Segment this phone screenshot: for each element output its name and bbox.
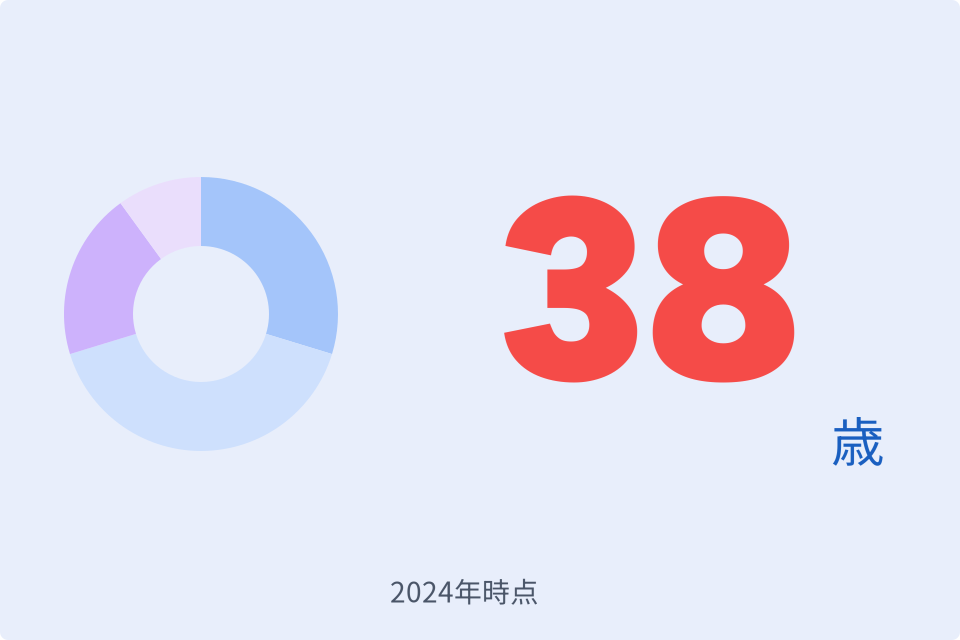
button[interactable]: 年齢構成の円グラフ [0, 0, 960, 640]
staticText: 2024年時点 [390, 570, 538, 610]
staticText: 歳 [831, 400, 884, 477]
staticText: 38 [499, 135, 802, 444]
